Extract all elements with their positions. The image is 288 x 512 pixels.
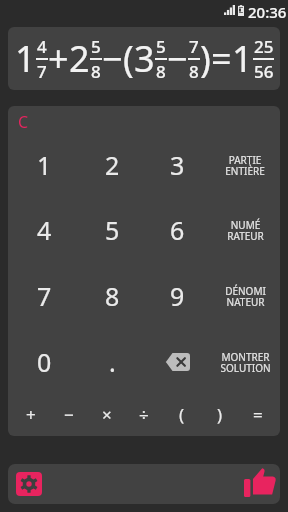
button[interactable]: × bbox=[88, 394, 125, 434]
button[interactable]: C bbox=[9, 108, 37, 136]
staticText: ) bbox=[217, 403, 223, 426]
staticText: 8 bbox=[156, 60, 166, 83]
staticText: C bbox=[18, 111, 29, 133]
staticText: 1 bbox=[15, 34, 36, 83]
staticText: 4 bbox=[37, 213, 52, 247]
staticText: 2 bbox=[105, 148, 120, 182]
button[interactable]: ( bbox=[163, 394, 200, 434]
button[interactable]: 1 bbox=[8, 27, 280, 90]
staticText: 4 bbox=[37, 35, 47, 58]
staticText: = bbox=[211, 34, 232, 83]
staticText: 6 bbox=[170, 213, 185, 247]
staticText: ÷ bbox=[139, 403, 149, 426]
staticText: ( bbox=[123, 34, 134, 83]
staticText: MONTRER SOLUTION bbox=[220, 350, 271, 375]
staticText: 1 bbox=[232, 34, 253, 83]
staticText: 1 bbox=[37, 148, 52, 182]
staticText: − bbox=[102, 34, 123, 83]
staticText: 3 bbox=[170, 148, 185, 182]
button[interactable]: − bbox=[50, 394, 87, 434]
staticText: ( bbox=[179, 403, 185, 426]
button[interactable]: 9 bbox=[148, 266, 206, 326]
staticText: DÉNOMI NATEUR bbox=[225, 284, 266, 309]
staticText: = bbox=[253, 403, 263, 426]
staticText: 7 bbox=[37, 279, 52, 313]
button[interactable]: Backspace bbox=[151, 334, 203, 390]
button[interactable]: . bbox=[83, 332, 141, 392]
button[interactable]: = bbox=[239, 394, 276, 434]
button[interactable]: ) bbox=[201, 394, 238, 434]
staticText: × bbox=[102, 403, 112, 426]
staticText: 0 bbox=[37, 345, 52, 379]
button[interactable]: 2 bbox=[83, 135, 141, 195]
button[interactable]: DÉNOMI NATEUR bbox=[213, 266, 277, 326]
button[interactable]: Like bbox=[242, 464, 278, 500]
button[interactable]: PARTIE ENTIÈRE bbox=[213, 135, 277, 195]
staticText: 9 bbox=[170, 279, 185, 313]
staticText: − bbox=[167, 34, 188, 83]
staticText: 3 bbox=[134, 34, 155, 83]
button[interactable]: MONTRER SOLUTION bbox=[213, 332, 277, 392]
button[interactable]: 5 bbox=[83, 200, 141, 260]
staticText: 5 bbox=[91, 35, 101, 58]
staticText: 20:36 bbox=[248, 2, 287, 18]
button[interactable]: NUMÉ RATEUR bbox=[213, 200, 277, 260]
button[interactable]: 6 bbox=[148, 200, 206, 260]
staticText: PARTIE ENTIÈRE bbox=[225, 153, 265, 178]
button[interactable]: 3 bbox=[148, 135, 206, 195]
staticText: 2 bbox=[69, 34, 90, 83]
button[interactable]: + bbox=[12, 394, 49, 434]
staticText: 8 bbox=[105, 279, 120, 313]
staticText: . bbox=[109, 345, 116, 379]
button[interactable]: 7 bbox=[15, 266, 73, 326]
staticText: + bbox=[26, 403, 36, 426]
button[interactable]: ÷ bbox=[125, 394, 162, 434]
button[interactable]: 4 bbox=[15, 200, 73, 260]
button[interactable]: Settings bbox=[16, 472, 42, 496]
staticText: 8 bbox=[189, 60, 199, 83]
staticText: 25 bbox=[254, 35, 274, 58]
staticText: 7 bbox=[189, 35, 199, 58]
staticText: 8 bbox=[91, 60, 101, 83]
staticText: + bbox=[48, 34, 69, 83]
staticText: 5 bbox=[105, 213, 120, 247]
staticText: − bbox=[64, 403, 74, 426]
button[interactable]: 8 bbox=[83, 266, 141, 326]
staticText: 5 bbox=[156, 35, 166, 58]
staticText: ) bbox=[200, 34, 211, 83]
staticText: 56 bbox=[254, 60, 274, 83]
staticText: 7 bbox=[37, 60, 47, 83]
staticText: NUMÉ RATEUR bbox=[227, 218, 264, 243]
button[interactable]: 1 bbox=[15, 135, 73, 195]
button[interactable]: 0 bbox=[15, 332, 73, 392]
